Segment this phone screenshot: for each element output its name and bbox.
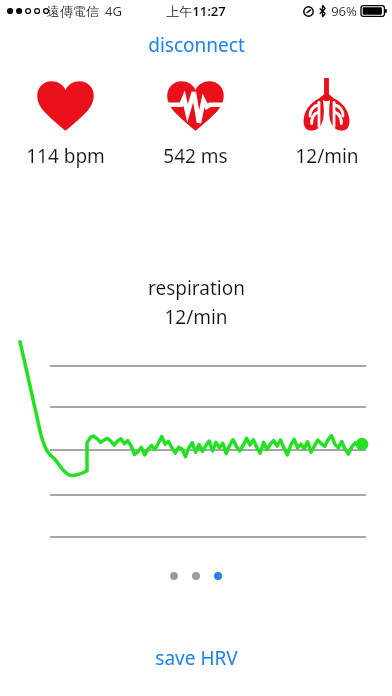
staticText: respiration bbox=[148, 275, 245, 301]
button[interactable]: Heart rate bbox=[0, 72, 130, 171]
staticText: 542 ms bbox=[163, 143, 228, 169]
button[interactable]: Heart rate variability bbox=[130, 72, 261, 171]
button[interactable]: save HRV bbox=[139, 641, 254, 675]
staticText: save HRV bbox=[155, 645, 238, 671]
staticText: 12/min bbox=[295, 143, 359, 169]
staticText: disconnect bbox=[148, 32, 245, 58]
staticText: 遠傳電信 bbox=[47, 3, 99, 19]
staticText: 4G bbox=[105, 2, 122, 20]
staticText: 114 bpm bbox=[26, 143, 105, 169]
button[interactable]: disconnect bbox=[134, 29, 259, 61]
button[interactable]: Respiration rate bbox=[261, 72, 392, 171]
button[interactable]: Respiration chart bbox=[0, 334, 392, 554]
button[interactable]: Page 3 of 3 bbox=[155, 566, 237, 586]
staticText: 12/min bbox=[164, 304, 228, 330]
staticText: 上午11:27 bbox=[166, 2, 226, 20]
staticText: 96% bbox=[331, 2, 357, 20]
